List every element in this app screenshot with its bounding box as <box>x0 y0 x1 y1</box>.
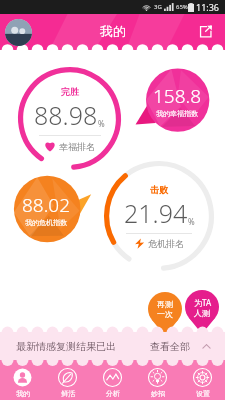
staticText: 11:36 <box>196 1 220 13</box>
button[interactable]: Share <box>194 20 216 42</box>
staticText: 3G <box>154 3 162 11</box>
staticText: 设置 <box>196 389 210 398</box>
button[interactable]: 我的 <box>0 365 45 400</box>
staticText: 最新情感复测结果已出 <box>16 340 116 353</box>
staticText: 88.02 <box>22 192 71 218</box>
staticText: 我的 <box>100 23 126 39</box>
button[interactable]: 为TA <box>185 290 219 334</box>
button[interactable]: 分析 <box>90 365 135 400</box>
staticText: 一次 <box>157 309 173 319</box>
staticText: 击败 <box>150 184 168 195</box>
staticText: % <box>98 118 105 129</box>
staticText: 21.94 <box>124 196 188 230</box>
button[interactable]: Profile <box>5 19 32 46</box>
staticText: 完胜 <box>61 86 79 97</box>
button[interactable]: 鲜活 <box>45 365 90 400</box>
staticText: 我的 <box>16 389 30 398</box>
staticText: 查看全部 <box>150 340 190 353</box>
button[interactable]: 再测 <box>148 292 182 336</box>
staticText: 65% <box>176 3 188 11</box>
staticText: 为TA <box>194 297 211 308</box>
button[interactable]: 妙招 <box>135 365 180 400</box>
button[interactable]: 设置 <box>180 365 225 400</box>
staticText: % <box>188 216 195 227</box>
staticText: 幸福排名 <box>59 141 95 152</box>
staticText: 88.98 <box>34 98 98 132</box>
staticText: 再测 <box>157 299 173 309</box>
staticText: 我的危机指数 <box>25 218 67 227</box>
button[interactable]: 88.02 <box>12 172 92 246</box>
staticText: 人测 <box>194 308 210 318</box>
button[interactable]: 158.8 <box>134 67 212 139</box>
staticText: 分析 <box>106 389 120 398</box>
button[interactable]: 最新情感复测结果已出 <box>0 328 225 361</box>
staticText: 鲜活 <box>61 389 75 398</box>
staticText: 妙招 <box>151 389 165 398</box>
staticText: 我的幸福指数 <box>156 109 198 118</box>
staticText: 158.8 <box>153 83 202 109</box>
staticText: 危机排名 <box>148 238 184 249</box>
